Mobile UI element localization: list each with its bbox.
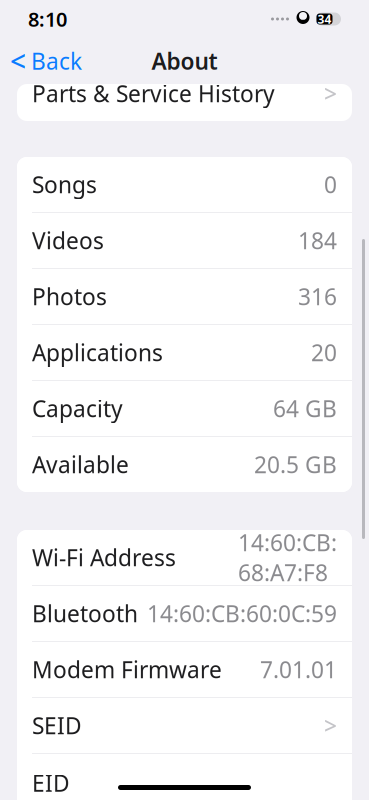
staticText: 14:60:CB:68:A7:F8 (238, 527, 337, 588)
staticText: 14:60:CB:60:0C:59 (147, 598, 337, 628)
staticText: SEID (32, 710, 82, 740)
staticText: About (151, 46, 217, 76)
button[interactable]: Photos (17, 269, 352, 324)
staticText: 64 GB (273, 393, 337, 423)
button[interactable]: Capacity (17, 381, 352, 436)
staticText: 184 (298, 225, 337, 255)
button[interactable]: < (0, 39, 92, 83)
staticText: 7.01.01 (260, 654, 337, 684)
staticText: Capacity (32, 393, 123, 423)
staticText: Parts & Service History (32, 78, 275, 108)
button[interactable]: Parts & Service History (17, 66, 352, 121)
staticText: 8:10 (28, 6, 67, 32)
staticText: 20 (311, 337, 337, 367)
button[interactable]: Bluetooth (17, 586, 352, 641)
button[interactable]: Available (17, 437, 352, 492)
staticText: 0 (324, 169, 337, 199)
staticText: 34 (317, 11, 331, 27)
button[interactable]: Modem Firmware (17, 642, 352, 697)
staticText: Photos (32, 281, 107, 311)
staticText: Back (31, 46, 82, 76)
staticText: < (10, 42, 26, 80)
staticText: Bluetooth (32, 598, 138, 628)
staticText: Modem Firmware (32, 654, 222, 684)
button[interactable]: Songs (17, 157, 352, 212)
button[interactable]: Wi-Fi Address (17, 530, 352, 585)
staticText: Wi-Fi Address (32, 542, 176, 572)
staticText: Songs (32, 169, 97, 199)
staticText: 20.5 GB (254, 449, 337, 479)
staticText: > (324, 710, 337, 740)
button[interactable]: EID (17, 754, 352, 800)
staticText: Available (32, 449, 129, 479)
staticText: 316 (298, 281, 337, 311)
button[interactable]: Videos (17, 213, 352, 268)
staticText: Applications (32, 337, 163, 367)
button[interactable]: Applications (17, 325, 352, 380)
staticText: Videos (32, 225, 104, 255)
button[interactable]: SEID (17, 698, 352, 753)
staticText: EID (32, 768, 70, 798)
staticText: > (324, 78, 337, 108)
